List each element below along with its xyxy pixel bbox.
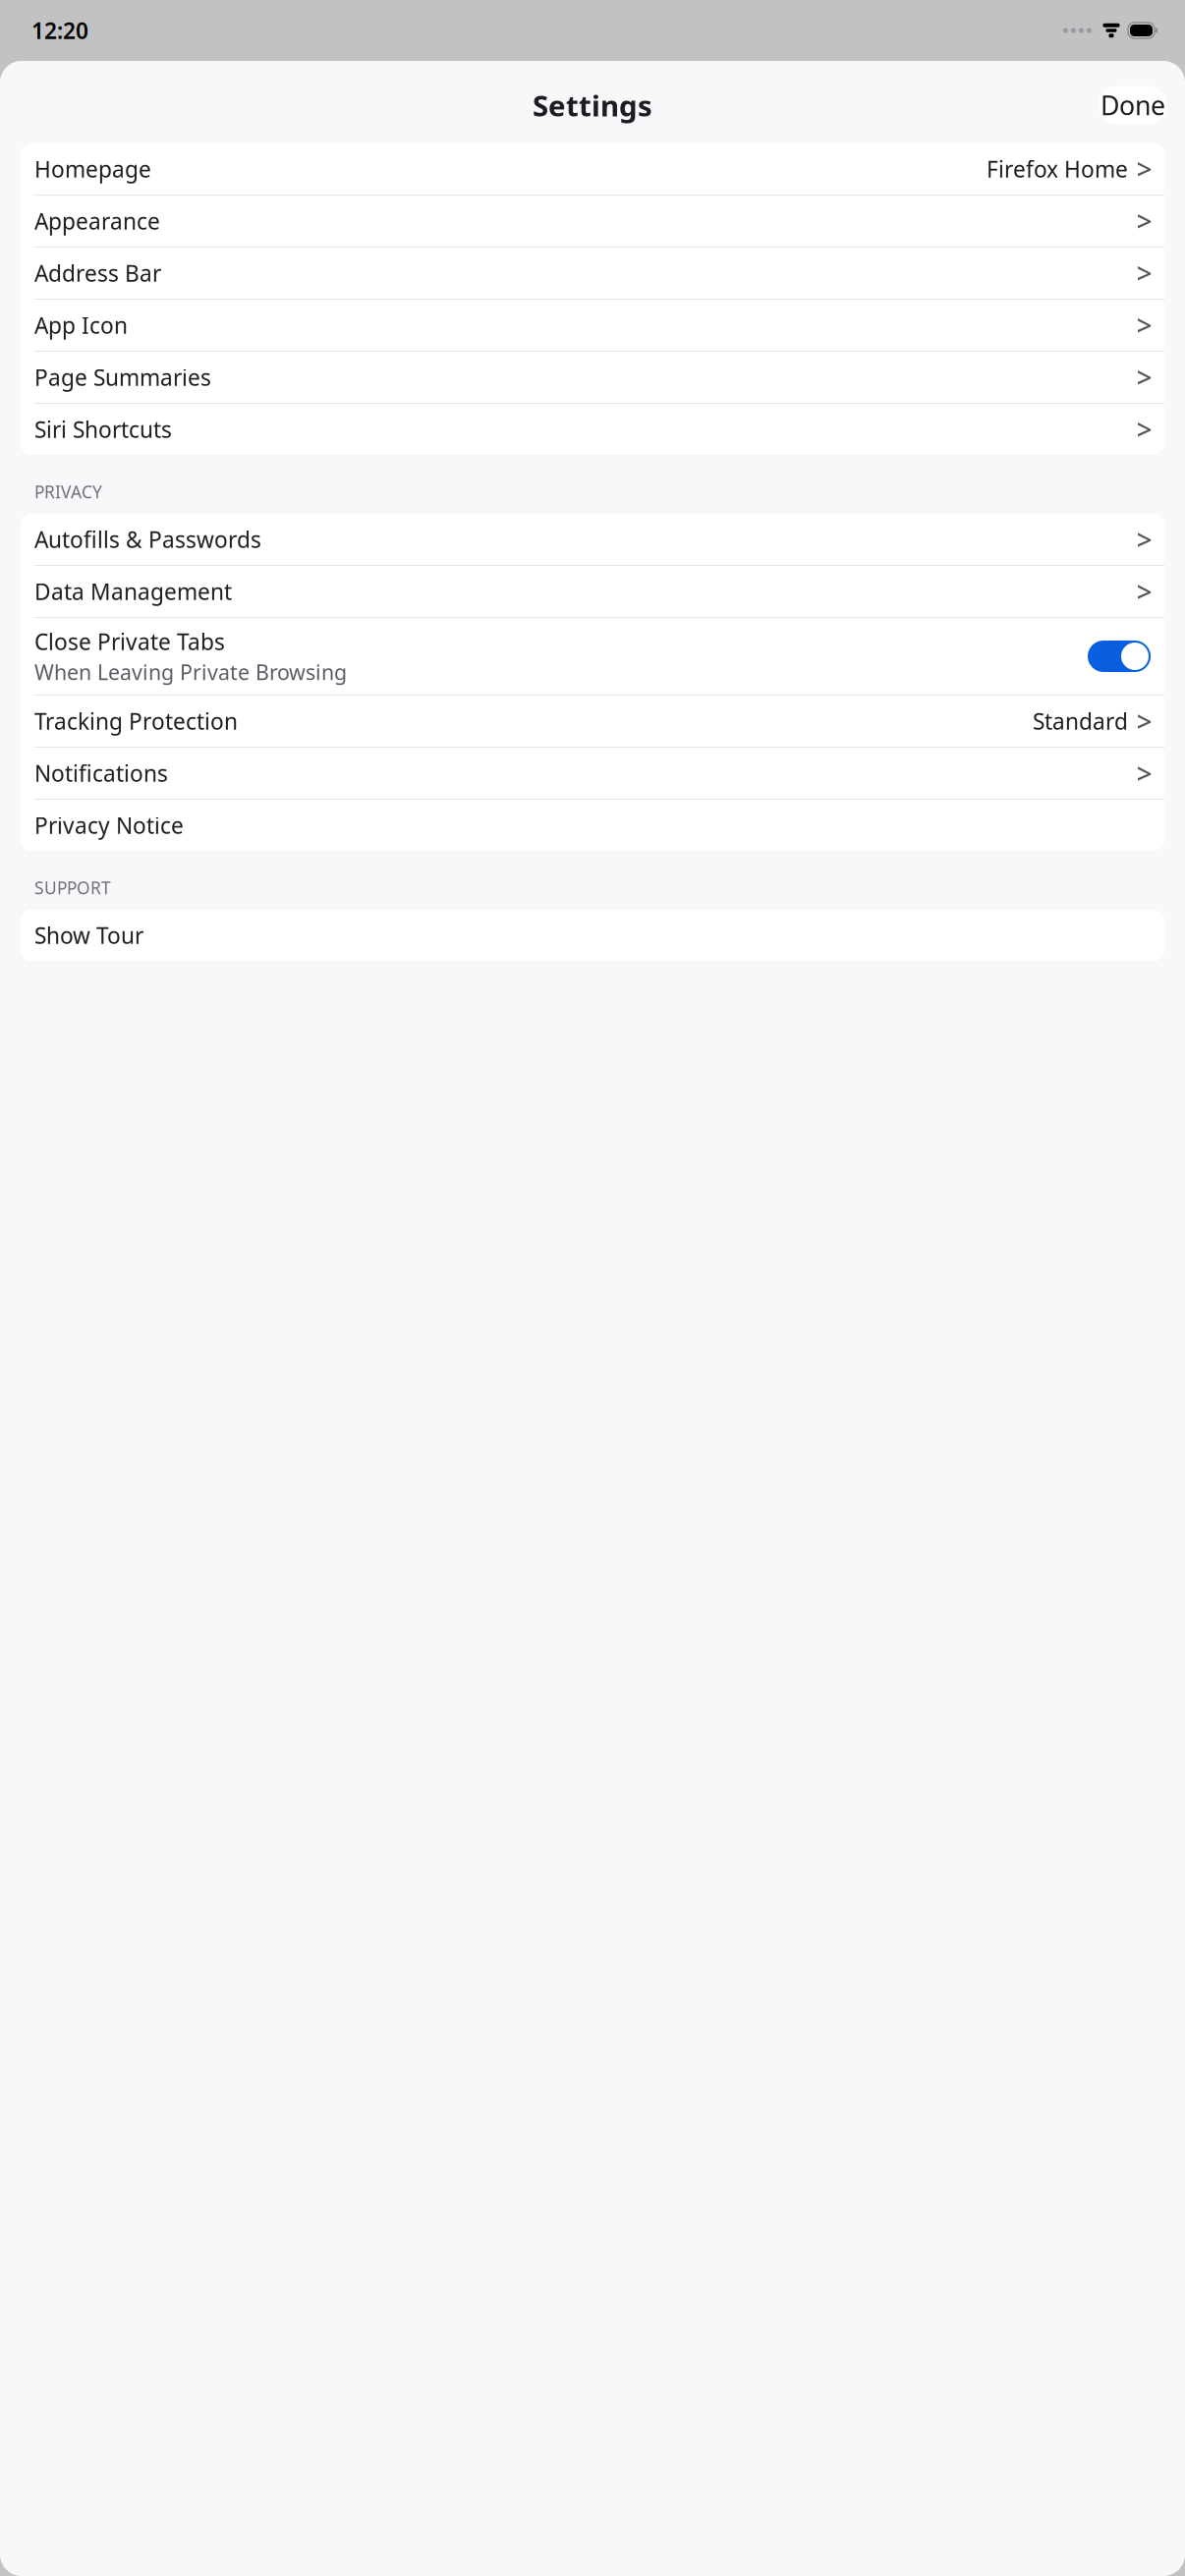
staticText: Show Tour: [34, 921, 143, 950]
staticText: Siri Shortcuts: [34, 414, 172, 444]
button[interactable]: Close Private Tabs: [21, 618, 1164, 695]
staticText: Page Summaries: [34, 362, 211, 392]
button[interactable]: Data Management: [21, 566, 1164, 617]
button[interactable]: Page Summaries: [21, 352, 1164, 403]
button[interactable]: Tracking Protection: [21, 696, 1164, 747]
staticText: >: [1136, 521, 1152, 558]
staticText: Done: [1100, 88, 1165, 123]
staticText: PRIVACY: [34, 480, 102, 503]
staticText: Settings: [533, 86, 652, 124]
button[interactable]: Homepage: [21, 143, 1164, 195]
button[interactable]: Appearance: [21, 196, 1164, 247]
staticText: >: [1136, 573, 1152, 610]
staticText: SUPPORT: [34, 876, 111, 899]
staticText: >: [1136, 755, 1152, 791]
staticText: Close Private Tabs: [34, 627, 225, 656]
staticText: Address Bar: [34, 258, 161, 288]
staticText: Notifications: [34, 758, 168, 788]
staticText: >: [1136, 411, 1152, 448]
staticText: Homepage: [34, 154, 151, 184]
staticText: >: [1136, 255, 1152, 291]
staticText: Autofills & Passwords: [34, 525, 261, 554]
staticText: Appearance: [34, 206, 160, 236]
staticText: 12:20: [31, 16, 88, 45]
button[interactable]: Show Tour: [21, 910, 1164, 961]
staticText: >: [1136, 203, 1152, 239]
button[interactable]: Address Bar: [21, 248, 1164, 299]
button[interactable]: Notifications: [21, 748, 1164, 799]
staticText: >: [1136, 359, 1152, 396]
staticText: Standard: [1033, 706, 1128, 736]
button[interactable]: Privacy Notice: [21, 800, 1164, 851]
button[interactable]: App Icon: [21, 300, 1164, 351]
button[interactable]: Autofills & Passwords: [21, 514, 1164, 565]
staticText: >: [1136, 703, 1152, 739]
staticText: Data Management: [34, 577, 232, 606]
staticText: Tracking Protection: [34, 706, 238, 736]
staticText: Firefox Home: [987, 154, 1128, 184]
staticText: >: [1136, 151, 1152, 187]
staticText: App Icon: [34, 310, 128, 340]
button[interactable]: Siri Shortcuts: [21, 404, 1164, 455]
staticText: Privacy Notice: [34, 811, 184, 840]
staticText: When Leaving Private Browsing: [34, 658, 347, 686]
button[interactable]: Done: [1099, 86, 1167, 124]
staticText: >: [1136, 307, 1152, 343]
